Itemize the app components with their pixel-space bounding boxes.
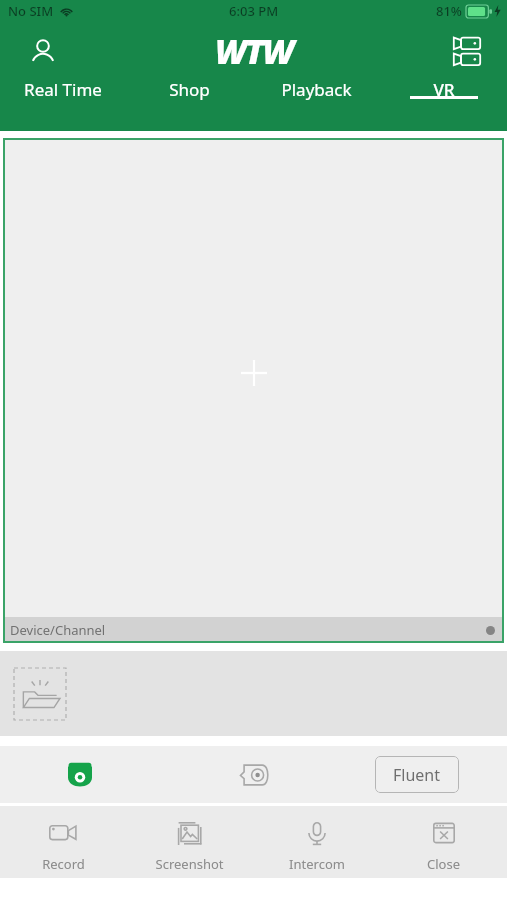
button[interactable]: Open folder	[14, 668, 66, 720]
staticText: 81%	[436, 2, 462, 20]
staticText: Shop	[169, 78, 210, 101]
staticText: Record	[42, 855, 85, 873]
button[interactable]: VR	[380, 82, 507, 105]
staticText: Screenshot	[155, 855, 224, 873]
button[interactable]: Playback	[253, 82, 380, 105]
staticText: Fluent	[393, 764, 441, 786]
staticText: Device/Channel	[10, 621, 106, 639]
button[interactable]: Record	[0, 812, 126, 873]
button[interactable]: Screenshot	[126, 812, 253, 873]
staticText: 6:03 PM	[229, 2, 279, 20]
button[interactable]: Fluent	[375, 756, 459, 793]
staticText: No SIM	[8, 2, 54, 20]
staticText: Real Time	[24, 78, 102, 101]
staticText: VR	[433, 78, 455, 101]
staticText: WTW	[215, 28, 293, 74]
button[interactable]: Switch camera	[232, 753, 276, 797]
staticText: Playback	[281, 78, 352, 101]
button[interactable]: Close	[380, 812, 507, 873]
button[interactable]: Intercom	[253, 812, 380, 873]
staticText: Intercom	[289, 855, 345, 873]
button[interactable]: Device/Channel	[3, 617, 504, 643]
button[interactable]: Real Time	[0, 82, 126, 105]
button[interactable]: Shop	[126, 82, 253, 105]
button[interactable]: Camera stream	[58, 753, 102, 797]
button[interactable]: Device list	[445, 30, 489, 74]
button[interactable]: Account	[22, 31, 64, 73]
staticText: Close	[427, 855, 460, 873]
